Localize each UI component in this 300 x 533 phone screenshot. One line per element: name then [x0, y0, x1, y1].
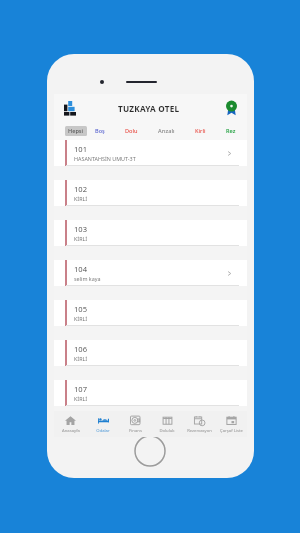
button[interactable]: Kirli	[192, 126, 209, 136]
button[interactable]: Rez	[223, 126, 239, 136]
button[interactable]: Hepsi	[65, 126, 87, 136]
staticText: Hepsi	[68, 127, 84, 135]
button[interactable]: Çarşaf Liste	[215, 411, 247, 437]
button[interactable]: Rezervasyon	[183, 411, 215, 437]
staticText: 106	[74, 344, 88, 354]
button[interactable]: Arızalı	[155, 126, 178, 136]
staticText: 101	[74, 144, 88, 154]
staticText: Doluluk	[159, 428, 175, 434]
staticText: HASANTAHSİN UMUT-3T	[74, 155, 136, 162]
staticText: KİRLİ	[74, 395, 88, 402]
staticText: Boş	[95, 127, 105, 135]
button[interactable]: 106	[54, 340, 247, 366]
button[interactable]: 103	[54, 220, 247, 246]
staticText: selim kaya	[74, 275, 101, 282]
button[interactable]: Dolu	[122, 126, 141, 136]
button[interactable]: 107	[54, 380, 247, 406]
button[interactable]: 102	[54, 180, 247, 206]
staticText: Kirli	[195, 127, 206, 135]
staticText: KİRLİ	[74, 355, 88, 362]
button[interactable]: 104	[54, 260, 247, 286]
staticText: 104	[74, 264, 88, 274]
button[interactable]: 101	[54, 140, 247, 166]
staticText: Finans	[129, 428, 142, 434]
button[interactable]: Notifications	[221, 97, 241, 119]
staticText: Anasayfa	[62, 428, 80, 434]
staticText: Rezervasyon	[187, 428, 212, 434]
button[interactable]: 105	[54, 300, 247, 326]
staticText: Arızalı	[158, 127, 175, 135]
button[interactable]: Odalar	[87, 411, 119, 437]
staticText: 102	[74, 184, 88, 194]
button[interactable]: Finans	[119, 411, 151, 437]
staticText: 107	[74, 384, 88, 394]
button[interactable]: Anasayfa	[54, 411, 87, 437]
staticText: Dolu	[125, 127, 138, 135]
staticText: Çarşaf Liste	[220, 428, 243, 434]
staticText: 103	[74, 224, 88, 234]
staticText: KİRLİ	[74, 315, 88, 322]
staticText: Rez	[226, 127, 236, 135]
staticText: TUZKAYA OTEL	[118, 103, 180, 114]
staticText: KİRLİ	[74, 235, 88, 242]
staticText: KİRLİ	[74, 195, 88, 202]
button[interactable]: Boş	[92, 126, 108, 136]
staticText: Odalar	[96, 428, 110, 434]
button[interactable]: Doluluk	[151, 411, 183, 437]
staticText: 105	[74, 304, 88, 314]
